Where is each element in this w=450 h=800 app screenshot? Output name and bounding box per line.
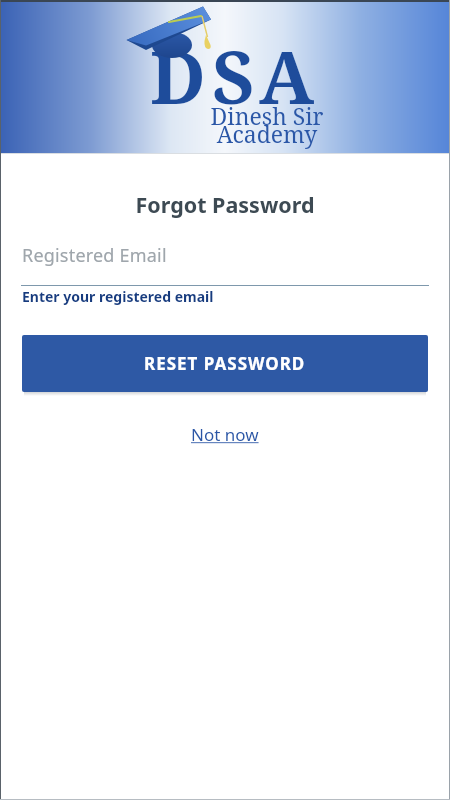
staticText: RESET PASSWORD — [144, 352, 306, 375]
button[interactable]: Not now — [191, 423, 259, 446]
staticText: Registered Email — [22, 243, 167, 268]
button[interactable]: Registered Email — [21, 243, 429, 286]
staticText: DSA — [10, 26, 450, 125]
staticText: Forgot Password — [0, 190, 450, 219]
staticText: Academy — [42, 118, 450, 149]
staticText: Dinesh Sir — [42, 100, 450, 131]
button[interactable]: RESET PASSWORD — [22, 335, 428, 392]
staticText: Enter your registered email — [22, 287, 214, 306]
